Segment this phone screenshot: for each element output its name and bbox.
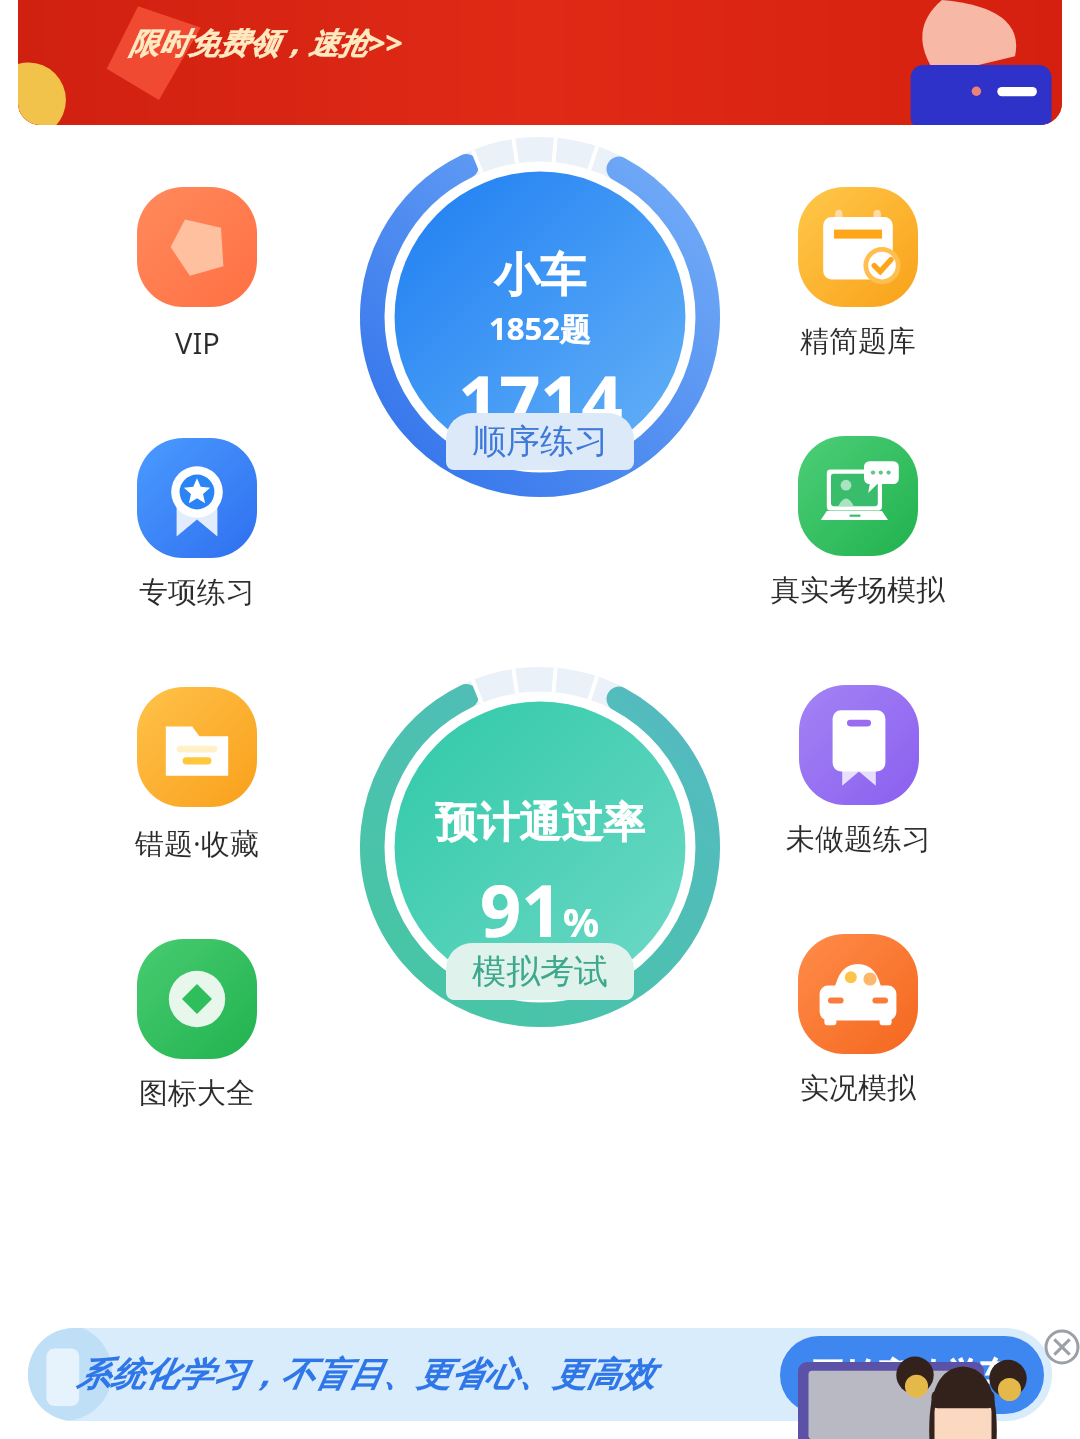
button[interactable]: 未做题练习 (786, 685, 931, 858)
staticText: 开始高效学车 (810, 1354, 1014, 1397)
staticText: 预计通过率 (435, 797, 645, 850)
staticText: 真实考场模拟 (771, 572, 945, 609)
staticText: 顺序练习 (472, 420, 608, 463)
button[interactable]: 实况模拟 (798, 934, 918, 1107)
button[interactable]: 真实考场模拟 (771, 436, 945, 609)
staticText: 1852题 (489, 307, 591, 349)
staticText: VIP (175, 323, 220, 362)
staticText: 图标大全 (139, 1075, 255, 1112)
staticText: 实况模拟 (800, 1070, 916, 1107)
button[interactable]: 关闭 (1044, 1329, 1080, 1365)
button[interactable]: 小车 (360, 137, 720, 497)
button[interactable]: 精简题库 (798, 187, 918, 360)
staticText: 未做题练习 (786, 821, 931, 858)
staticText: 限时免费领，速抢>> (128, 22, 403, 63)
staticText: 1714 (458, 351, 623, 449)
staticText: 模拟考试 (472, 950, 608, 993)
button[interactable]: 专项练习 (137, 438, 257, 611)
button[interactable]: 图标大全 (137, 939, 257, 1112)
staticText: % (563, 894, 600, 948)
staticText: 系统化学习，不盲目、更省心、更高效 (76, 1353, 654, 1396)
button[interactable]: 预计通过率 (360, 667, 720, 1027)
staticText: 91 (480, 860, 563, 958)
staticText: 精简题库 (800, 323, 916, 360)
staticText: 小车 (494, 247, 586, 305)
button[interactable]: 限时免费领，速抢>> (18, 0, 1062, 125)
button[interactable]: 系统化学习，不盲目、更省心、更高效 (28, 1328, 1052, 1421)
button[interactable]: 错题·收藏 (135, 687, 259, 863)
staticText: 专项练习 (139, 574, 255, 611)
button[interactable]: 开始高效学车 (780, 1336, 1044, 1414)
staticText: 错题·收藏 (135, 823, 259, 863)
button[interactable]: VIP (137, 187, 257, 362)
